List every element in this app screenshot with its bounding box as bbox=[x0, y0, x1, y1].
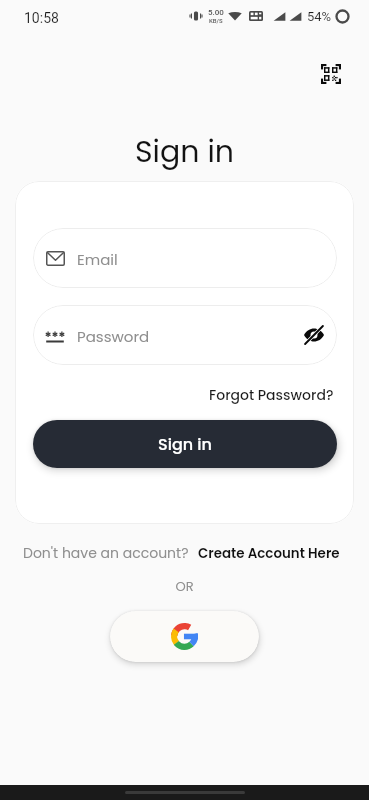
staticText: 54% bbox=[307, 9, 332, 24]
button[interactable]: Scan QR code bbox=[305, 50, 353, 98]
staticText: Password bbox=[77, 326, 150, 347]
staticText: 5.00 bbox=[208, 8, 224, 17]
staticText: OR bbox=[0, 577, 369, 595]
button[interactable]: Create Account Here bbox=[198, 544, 340, 563]
button[interactable]: Toggle password visibility bbox=[301, 322, 327, 348]
staticText: 10:58 bbox=[24, 10, 59, 26]
button[interactable]: Sign in with Google bbox=[110, 611, 259, 662]
staticText: Email bbox=[77, 249, 118, 270]
button[interactable]: Forgot Password? bbox=[205, 382, 338, 408]
staticText: Sign in bbox=[158, 433, 212, 455]
button[interactable]: Sign in bbox=[33, 420, 337, 468]
button[interactable]: Email bbox=[33, 228, 337, 288]
staticText: Don't have an account? bbox=[23, 543, 189, 563]
staticText: Sign in bbox=[0, 131, 369, 173]
staticText: KB/S bbox=[209, 17, 223, 24]
button[interactable]: Password bbox=[33, 305, 337, 365]
